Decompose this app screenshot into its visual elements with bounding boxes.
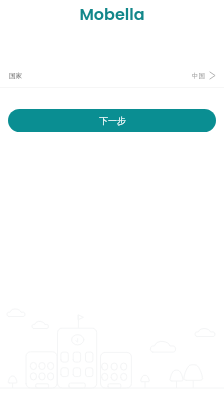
staticText: 下一步 (99, 115, 126, 126)
staticText: 中国 (192, 72, 205, 80)
button[interactable]: 国家 (0, 64, 224, 88)
button[interactable]: 下一步 (8, 109, 216, 132)
staticText: Mobella (0, 3, 224, 25)
staticText: 国家 (9, 72, 22, 80)
other: Choose country (209, 71, 216, 80)
